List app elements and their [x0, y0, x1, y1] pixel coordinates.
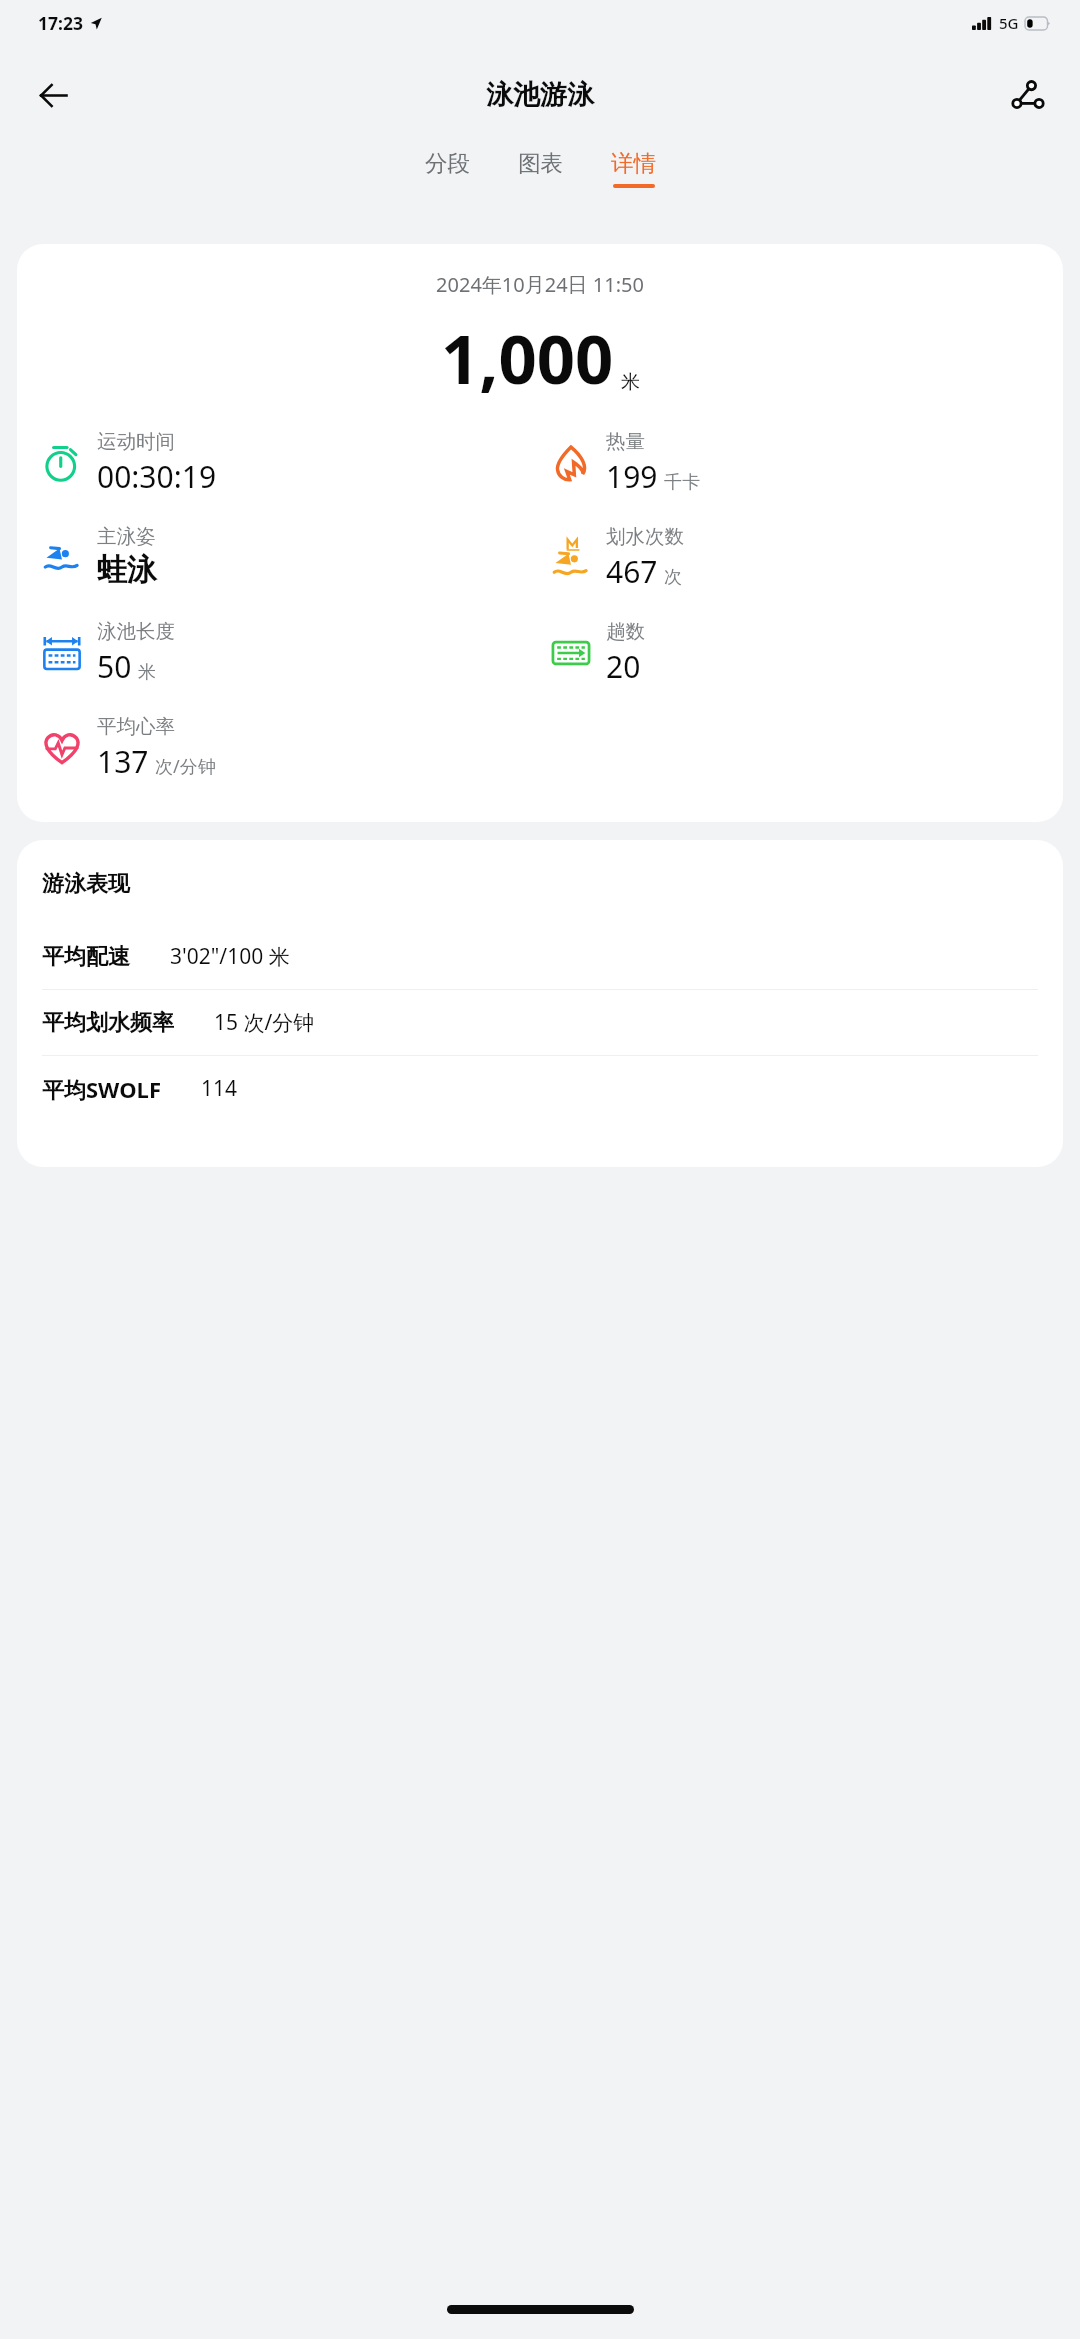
staticText: 3'02"/100 米	[170, 942, 290, 971]
staticText: 划水次数	[606, 524, 684, 549]
button[interactable]: Back	[22, 64, 84, 126]
staticText: 次	[664, 566, 682, 589]
staticText: 17:23	[38, 11, 83, 35]
staticText: 平均SWOLF	[42, 1074, 161, 1104]
staticText: 20	[606, 646, 641, 687]
staticText: 图表	[518, 149, 563, 177]
button[interactable]: 平均配速	[17, 924, 1063, 989]
staticText: 分段	[425, 149, 470, 177]
staticText: 平均配速	[42, 943, 130, 971]
staticText: 泳池长度	[97, 619, 175, 644]
staticText: 详情	[611, 149, 656, 177]
button[interactable]: 分段	[415, 145, 480, 192]
staticText: 平均心率	[97, 714, 175, 739]
staticText: 2024年10月24日 11:50	[17, 271, 1063, 298]
staticText: 蛙泳	[97, 551, 157, 589]
staticText: 1,000	[441, 312, 614, 403]
staticText: 114	[201, 1074, 238, 1103]
staticText: 热量	[606, 429, 645, 454]
staticText: 米	[138, 661, 156, 684]
staticText: 15 次/分钟	[214, 1008, 315, 1037]
staticText: 平均划水频率	[42, 1009, 174, 1037]
staticText: 次/分钟	[155, 754, 216, 779]
button[interactable]: 详情	[601, 145, 666, 192]
staticText: 00:30:19	[97, 456, 217, 497]
staticText: 50	[97, 646, 132, 687]
staticText: 趟数	[606, 619, 645, 644]
staticText: 199	[606, 456, 658, 497]
staticText: 游泳表现	[42, 870, 130, 898]
staticText: 137	[97, 741, 149, 782]
button[interactable]: Share	[996, 64, 1058, 126]
staticText: 运动时间	[97, 429, 175, 454]
staticText: 5G	[999, 13, 1019, 33]
button[interactable]: 图表	[508, 145, 573, 192]
staticText: 467	[606, 551, 658, 592]
staticText: 主泳姿	[97, 524, 156, 549]
staticText: 泳池游泳	[486, 78, 594, 112]
staticText: 千卡	[664, 471, 700, 494]
button[interactable]: 平均SWOLF	[17, 1056, 1063, 1121]
button[interactable]: 平均划水频率	[17, 990, 1063, 1055]
staticText: 米	[621, 370, 640, 394]
